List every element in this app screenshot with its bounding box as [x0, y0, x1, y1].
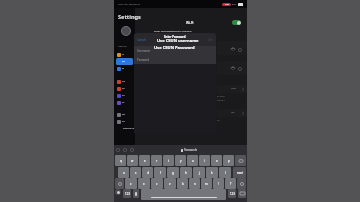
staticText: e: [144, 159, 146, 163]
button[interactable]: next: [233, 167, 246, 178]
staticText: j: [199, 171, 200, 175]
button[interactable]: l: [219, 167, 231, 178]
button[interactable]: ?: [225, 178, 236, 189]
button[interactable]: z: [125, 178, 137, 189]
staticText: Fo: [122, 94, 125, 97]
staticText: Auto: [231, 87, 236, 90]
button[interactable]: Co: [116, 118, 133, 125]
staticText: 123: [125, 192, 130, 196]
button[interactable]: So: [116, 85, 133, 92]
button[interactable]: Shift: [115, 178, 124, 189]
button[interactable]: Fo: [116, 92, 133, 99]
button[interactable]: Ge: [116, 111, 133, 118]
button[interactable]: Join: [208, 38, 213, 42]
button[interactable]: f: [154, 167, 166, 178]
button[interactable]: w: [127, 155, 138, 166]
button[interactable]: d: [142, 167, 153, 178]
staticText: Wi-Fi: [186, 21, 194, 25]
staticText: y: [180, 159, 182, 163]
button[interactable]: Delete: [235, 155, 246, 166]
staticText: d: [147, 171, 149, 175]
button[interactable]: x: [138, 178, 150, 189]
button[interactable]: Wi: [116, 58, 133, 65]
staticText: ?: [230, 182, 232, 186]
button[interactable]: h: [180, 167, 192, 178]
staticText: Sc: [122, 101, 125, 104]
staticText: h: [185, 171, 187, 175]
staticText: q: [120, 159, 122, 163]
button[interactable]: o: [211, 155, 222, 166]
button[interactable]: n: [189, 178, 200, 189]
button[interactable]: Emoji: [115, 189, 121, 195]
button[interactable]: Undo: [116, 148, 120, 152]
button[interactable]: j: [193, 167, 205, 178]
staticText: m: [205, 182, 208, 186]
button[interactable]: 123: [228, 189, 236, 198]
staticText: Control Center: [123, 127, 139, 130]
button[interactable]: Sc: [116, 99, 133, 106]
staticText: r: [156, 159, 158, 163]
staticText: x: [143, 182, 145, 186]
button[interactable]: !: [213, 178, 224, 189]
button[interactable]: Shift: [237, 178, 246, 189]
staticText: Co: [122, 120, 125, 123]
button[interactable]: Bl: [116, 65, 133, 72]
button[interactable]: Redo: [123, 148, 127, 152]
button[interactable]: Ai: [116, 51, 133, 58]
staticText: g: [172, 171, 174, 175]
button[interactable]: b: [177, 178, 188, 189]
button[interactable]: g: [167, 167, 179, 178]
staticText: So: [122, 87, 125, 90]
staticText: Join: [208, 38, 213, 42]
staticText: Username: [137, 49, 151, 53]
button[interactable]: Passwords: [181, 148, 197, 152]
staticText: n: [194, 182, 196, 186]
button[interactable]: 123: [123, 189, 131, 198]
staticText: f: [160, 171, 161, 175]
button[interactable]: k: [206, 167, 218, 178]
button[interactable]: Cancel: [134, 38, 146, 42]
button[interactable]: u: [187, 155, 198, 166]
button[interactable]: Account: [121, 26, 131, 36]
staticText: No: [122, 80, 125, 83]
staticText: k: [211, 171, 213, 175]
button[interactable]: Auto: [217, 85, 247, 93]
staticText: 123: [230, 192, 235, 196]
staticText: Ai: [122, 53, 124, 56]
button[interactable]: Network: [217, 61, 247, 75]
staticText: c: [156, 182, 158, 186]
button[interactable]: Wi-Fi toggle: [232, 20, 241, 25]
button[interactable]: Hide keyboard: [238, 189, 246, 198]
button[interactable]: Paste: [130, 148, 134, 152]
button[interactable]: No: [116, 78, 133, 85]
staticText: Ge: [122, 113, 125, 116]
button[interactable]: Network: [217, 41, 247, 55]
button[interactable]: t: [163, 155, 174, 166]
button[interactable]: Dictation: [133, 189, 139, 198]
staticText: b: [182, 182, 184, 186]
staticText: z: [130, 182, 132, 186]
button[interactable]: e: [139, 155, 150, 166]
staticText: o: [216, 159, 218, 163]
button[interactable]: y: [175, 155, 186, 166]
staticText: 10:47 AM Thu Oct 27: [118, 3, 140, 6]
staticText: t: [168, 159, 170, 163]
staticText: Password: [137, 58, 150, 62]
button[interactable]: q: [115, 155, 126, 166]
button[interactable]: Space: [141, 189, 226, 200]
staticText: Bl: [122, 67, 124, 70]
button[interactable]: r: [151, 155, 162, 166]
button[interactable]: p: [223, 155, 234, 166]
button[interactable]: v: [164, 178, 176, 189]
button[interactable]: i: [199, 155, 210, 166]
staticText: 1:02: [225, 3, 229, 6]
staticText: next: [237, 171, 243, 175]
button[interactable]: Ask: [217, 109, 247, 117]
button[interactable]: m: [201, 178, 212, 189]
staticText: Ask: [231, 111, 235, 114]
button[interactable]: a: [118, 167, 129, 178]
button[interactable]: c: [151, 178, 163, 189]
button[interactable]: s: [130, 167, 141, 178]
staticText: 60%: [232, 3, 237, 6]
staticText: l: [225, 171, 226, 175]
